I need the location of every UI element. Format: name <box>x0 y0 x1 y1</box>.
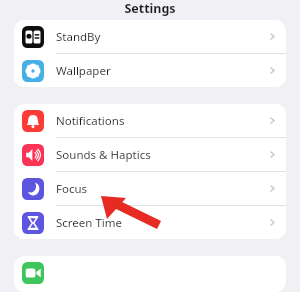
staticText: Focus <box>56 181 88 197</box>
staticText: Wallpaper <box>56 63 111 79</box>
staticText: Screen Time <box>56 215 123 231</box>
button[interactable]: StandBy <box>14 20 286 53</box>
staticText: Settings <box>124 0 176 17</box>
button[interactable]: Focus <box>14 172 286 205</box>
button[interactable]: Wallpaper <box>14 54 286 87</box>
button[interactable]: Sounds & Haptics <box>14 138 286 171</box>
staticText: StandBy <box>56 29 101 45</box>
other: FaceTime <box>22 262 44 284</box>
button[interactable]: Notifications <box>14 104 286 137</box>
button[interactable]: FaceTime <box>14 256 286 289</box>
staticText: Notifications <box>56 113 125 129</box>
staticText: Sounds & Haptics <box>56 147 151 163</box>
button[interactable]: Screen Time <box>14 206 286 239</box>
